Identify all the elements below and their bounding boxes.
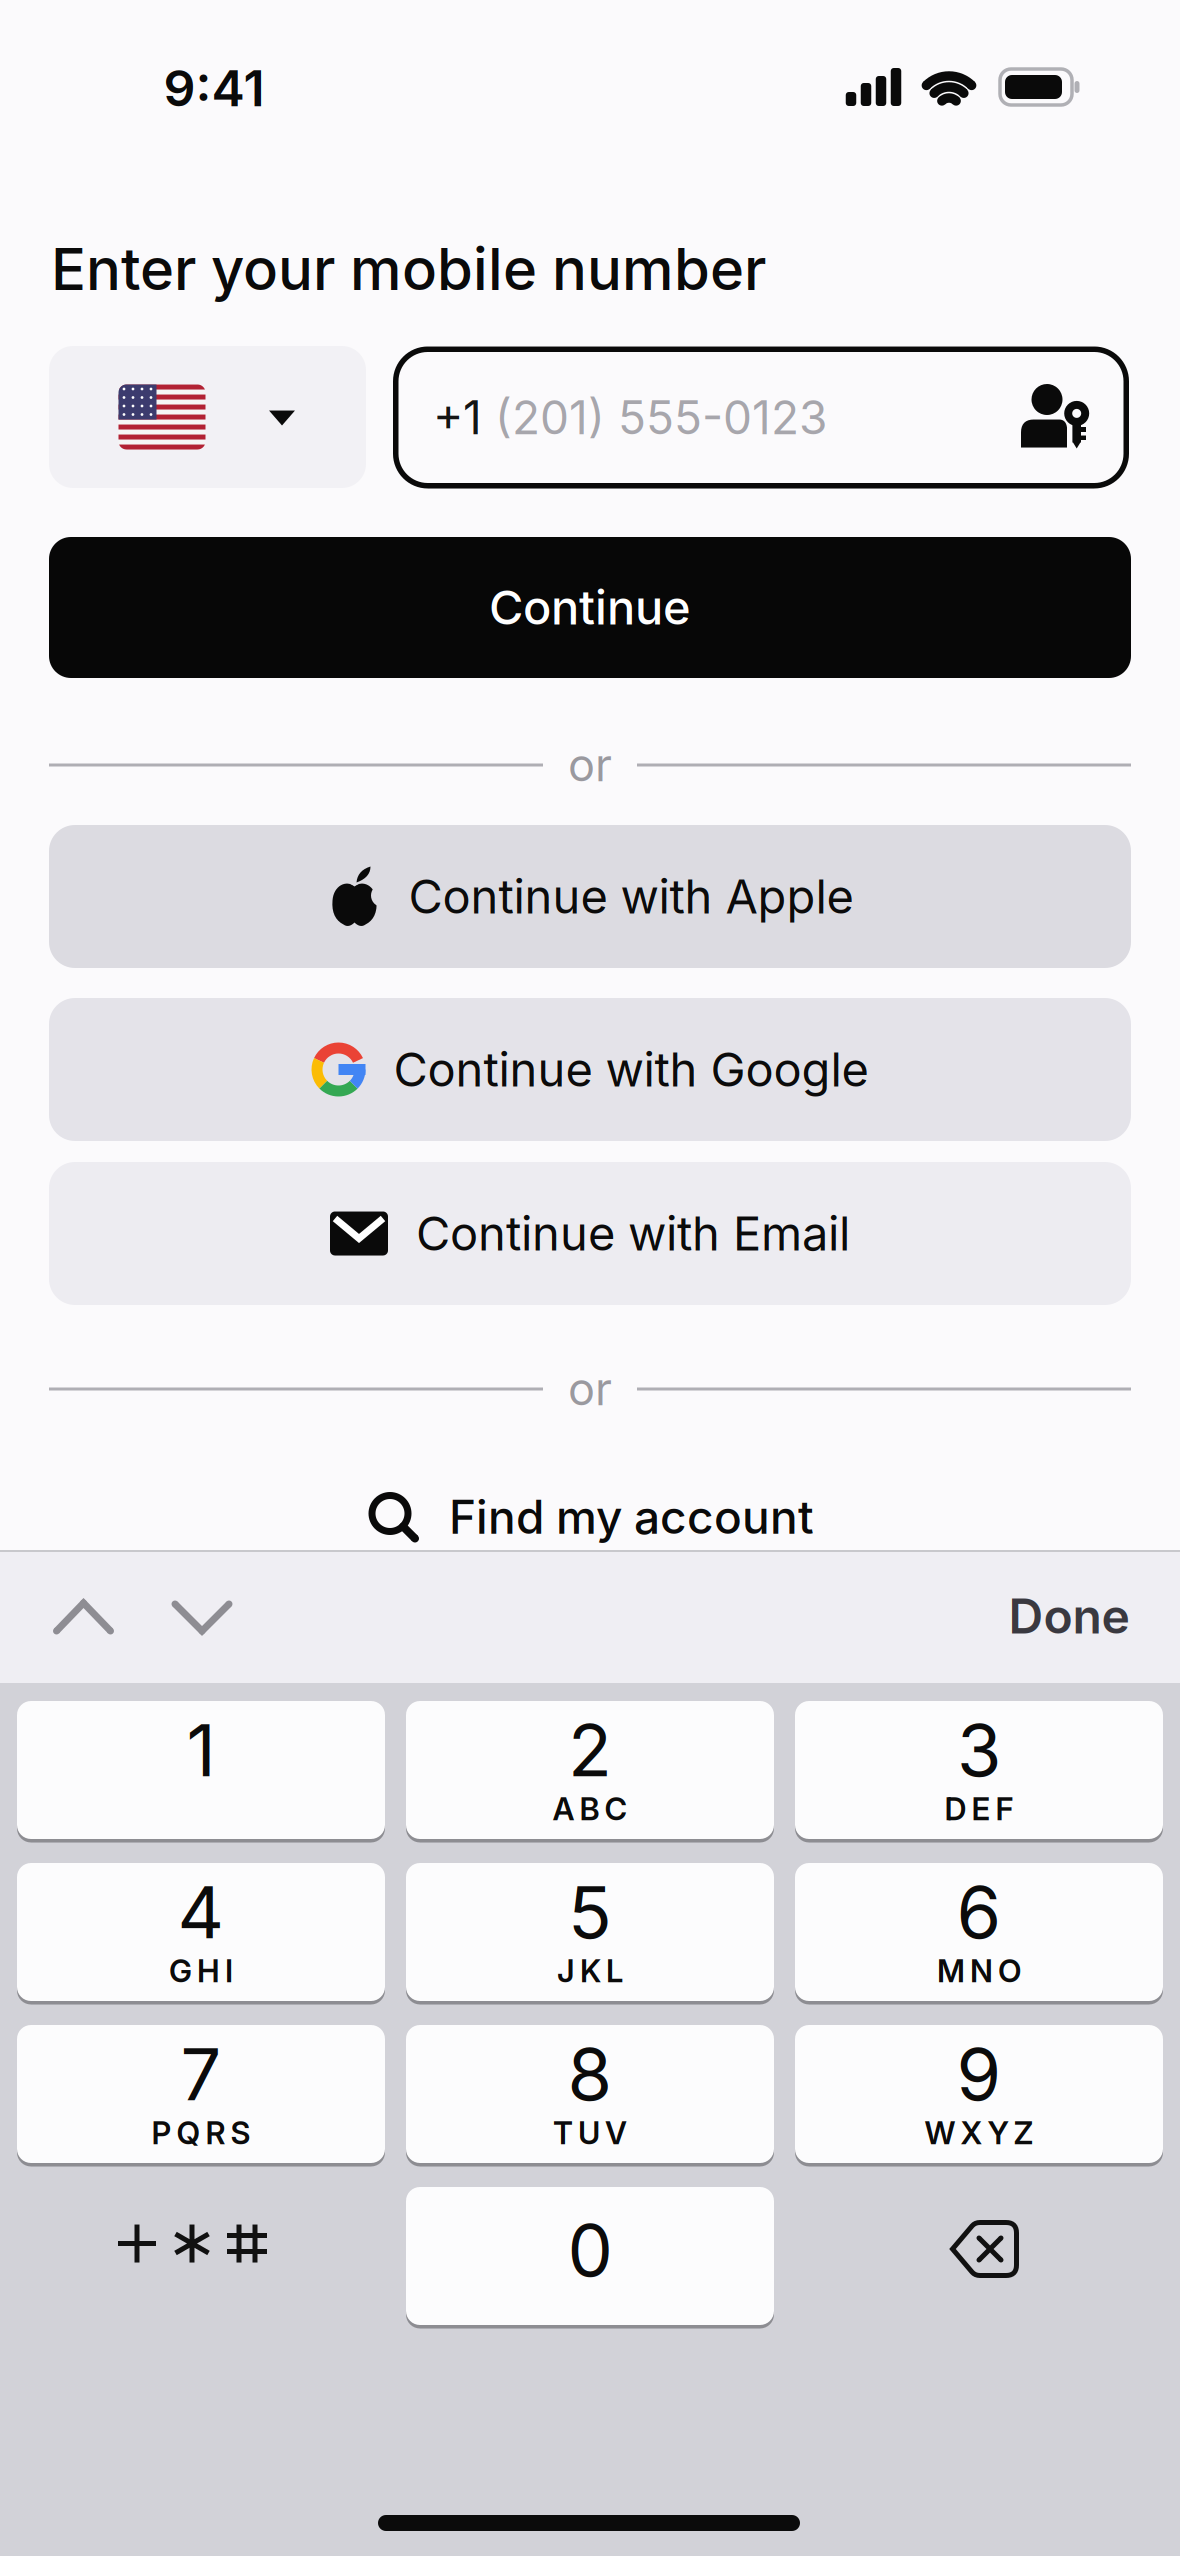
button[interactable]: 9 xyxy=(795,2025,1163,2163)
staticText: (201) 555-0123 xyxy=(482,390,827,445)
staticText: ABC xyxy=(552,1790,627,1828)
staticText: Done xyxy=(1008,1587,1129,1645)
button[interactable]: 4 xyxy=(17,1863,385,2001)
button[interactable]: 1 xyxy=(17,1701,385,1839)
button[interactable]: 0 xyxy=(406,2187,774,2325)
staticText: WXYZ xyxy=(924,2114,1033,2152)
staticText: Continue with Google xyxy=(393,1041,868,1098)
button[interactable]: Previous field xyxy=(52,1599,114,1635)
staticText: Find my account xyxy=(449,1489,814,1545)
button[interactable]: 8 xyxy=(406,2025,774,2163)
button[interactable]: 2 xyxy=(406,1701,774,1839)
button[interactable]: Find my account xyxy=(366,1489,814,1545)
staticText: MNO xyxy=(937,1952,1021,1990)
button[interactable]: Continue with Apple xyxy=(49,825,1131,968)
staticText: PQRS xyxy=(151,2114,250,2152)
button[interactable]: Plus star pound xyxy=(118,2217,276,2269)
staticText: 0 xyxy=(567,2206,612,2293)
button[interactable]: Delete xyxy=(950,2220,1019,2278)
staticText: 8 xyxy=(567,2030,612,2117)
staticText: Continue with Apple xyxy=(408,868,853,925)
staticText: 5 xyxy=(568,1868,612,1955)
staticText: Enter your mobile number xyxy=(51,234,766,304)
staticText: 4 xyxy=(177,1868,224,1955)
staticText: Continue with Email xyxy=(416,1205,850,1262)
button[interactable]: 3 xyxy=(795,1701,1163,1839)
button[interactable]: Select country code xyxy=(49,346,366,488)
button[interactable]: Continue with Email xyxy=(49,1162,1131,1305)
staticText: Continue xyxy=(489,579,691,636)
button[interactable]: 5 xyxy=(406,1863,774,2001)
staticText: 9:41 xyxy=(163,58,264,118)
staticText: or xyxy=(568,738,612,792)
staticText: DEF xyxy=(944,1790,1013,1828)
button[interactable]: Continue with Google xyxy=(49,998,1131,1141)
staticText: 2 xyxy=(568,1706,612,1793)
button[interactable]: Next field xyxy=(171,1600,233,1636)
button[interactable]: Mobile number xyxy=(393,346,1129,488)
staticText: JKL xyxy=(557,1952,623,1990)
button[interactable]: Continue xyxy=(49,537,1131,678)
button[interactable]: 6 xyxy=(795,1863,1163,2001)
staticText: 1 xyxy=(186,1706,215,1793)
staticText: 3 xyxy=(957,1706,1001,1793)
staticText: TUV xyxy=(553,2114,627,2152)
button[interactable]: Done xyxy=(1008,1587,1129,1645)
button[interactable]: 7 xyxy=(17,2025,385,2163)
staticText: GHI xyxy=(169,1952,233,1990)
staticText: 9 xyxy=(956,2030,1001,2117)
staticText: +1 xyxy=(433,390,482,445)
staticText: 7 xyxy=(180,2030,221,2117)
staticText: or xyxy=(568,1362,612,1416)
staticText: 6 xyxy=(956,1868,1001,1955)
